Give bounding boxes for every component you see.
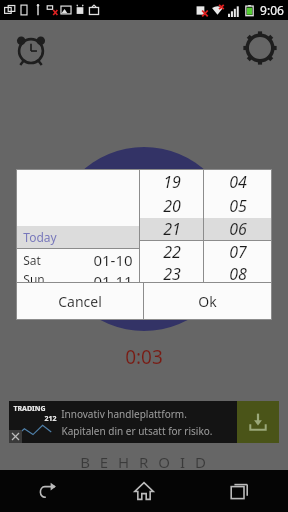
staticText: 9:06 xyxy=(260,2,284,18)
button[interactable]: 20 xyxy=(140,194,203,218)
staticText: Today xyxy=(23,229,57,245)
button[interactable]: 06 xyxy=(204,218,271,240)
button[interactable]: 07 xyxy=(204,241,271,263)
staticText: Kapitalen din er utsatt for risiko. xyxy=(61,424,213,438)
button[interactable]: Install xyxy=(237,401,279,443)
staticText: 05 xyxy=(229,195,247,217)
button[interactable]: Alarms xyxy=(8,26,54,72)
button[interactable]: Ok xyxy=(144,283,271,319)
staticText: Sun xyxy=(23,271,45,282)
staticText: 22 xyxy=(163,241,181,263)
staticText: 08 xyxy=(229,263,247,282)
button[interactable]: 19 xyxy=(140,170,203,194)
staticText: Sat xyxy=(23,252,41,268)
button[interactable]: 21 xyxy=(140,218,203,240)
button[interactable]: 04 xyxy=(204,170,271,194)
staticText: 01-11 xyxy=(93,271,133,282)
button[interactable]: Back xyxy=(0,470,96,512)
staticText: 212 xyxy=(44,414,57,424)
staticText: 23 xyxy=(163,263,181,282)
staticText: TRADING xyxy=(13,404,46,414)
staticText: 06 xyxy=(229,218,247,240)
button[interactable]: Today xyxy=(17,226,139,248)
button[interactable]: Recents xyxy=(192,470,288,512)
staticText: Cancel xyxy=(58,292,102,311)
button[interactable]: 08 xyxy=(204,263,271,282)
button[interactable]: Settings xyxy=(238,26,282,70)
button[interactable]: 22 xyxy=(140,241,203,263)
staticText: 20 xyxy=(163,195,181,217)
staticText: B E H R O I D xyxy=(80,452,209,472)
button[interactable]: Close ad xyxy=(9,430,22,443)
staticText: Innovativ handleplattform. xyxy=(61,407,187,421)
staticText: 07 xyxy=(229,241,247,263)
staticText: 21 xyxy=(163,218,181,240)
button[interactable]: Sun xyxy=(17,271,139,282)
button[interactable]: Cancel xyxy=(17,283,143,319)
button[interactable]: 23 xyxy=(140,263,203,282)
staticText: Ok xyxy=(198,292,217,311)
staticText: 19 xyxy=(163,171,181,193)
staticText: 0:03 xyxy=(125,344,163,370)
staticText: 01-10 xyxy=(93,250,133,270)
button[interactable]: Home xyxy=(96,470,192,512)
button[interactable]: 05 xyxy=(204,194,271,218)
staticText: 04 xyxy=(229,171,247,193)
button[interactable]: Sat xyxy=(17,249,139,271)
button[interactable]: TRADING xyxy=(9,401,279,443)
